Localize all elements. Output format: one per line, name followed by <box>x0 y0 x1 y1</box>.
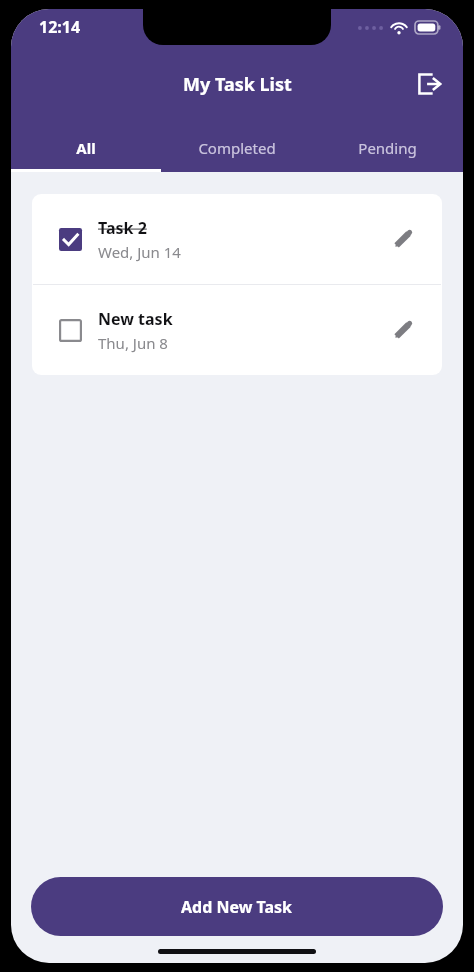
staticText: Task 2 <box>98 217 147 239</box>
staticText: Completed <box>198 138 276 158</box>
button[interactable]: Mark complete <box>50 310 90 350</box>
button[interactable]: Add New Task <box>31 877 443 936</box>
button[interactable]: Pending <box>312 124 463 172</box>
staticText: 12:14 <box>39 16 81 38</box>
staticText: My Task List <box>183 72 292 97</box>
staticText: Thu, Jun 8 <box>98 333 168 353</box>
staticText: All <box>76 138 96 158</box>
staticText: Pending <box>358 138 417 158</box>
button[interactable]: Edit task <box>380 308 424 352</box>
button[interactable]: Log out <box>405 60 453 108</box>
staticText: New task <box>98 308 173 330</box>
button[interactable]: Mark complete <box>32 285 442 375</box>
button[interactable]: Mark incomplete <box>50 219 90 259</box>
button[interactable]: All <box>11 124 161 172</box>
staticText: Wed, Jun 14 <box>98 242 181 262</box>
button[interactable]: Edit task <box>380 217 424 261</box>
staticText: Add New Task <box>181 896 293 918</box>
button[interactable]: Completed <box>161 124 312 172</box>
button[interactable]: Mark incomplete <box>32 194 442 284</box>
